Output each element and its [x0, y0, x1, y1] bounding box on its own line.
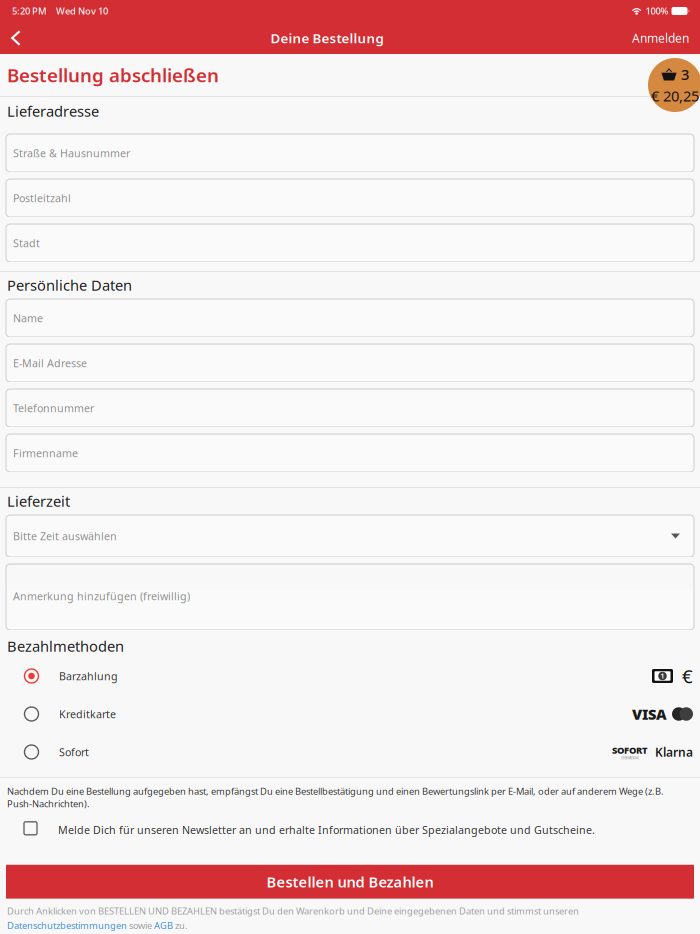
- staticText: Persönliche Daten: [7, 275, 132, 295]
- button[interactable]: Anmerkung hinzufügen (freiwillig): [0, 564, 700, 630]
- staticText: Melde Dich für unseren Newsletter an und…: [58, 823, 595, 837]
- button[interactable]: Zurück: [0, 22, 34, 54]
- staticText: Bitte Zeit auswählen: [13, 529, 117, 543]
- staticText: 3: [681, 64, 689, 84]
- staticText: Anmerkung hinzufügen (freiwillig): [13, 589, 190, 603]
- button[interactable]: Stadt: [0, 224, 700, 262]
- staticText: Lieferzeit: [7, 491, 70, 511]
- staticText: Bestellen und Bezahlen: [266, 872, 433, 891]
- staticText: Klarna: [655, 744, 693, 760]
- staticText: Anmelden: [632, 30, 689, 46]
- staticText: 5:20 PM: [12, 5, 47, 17]
- staticText: Datenschutzbestimmungen: [7, 919, 127, 932]
- button[interactable]: Kreditkarte: [0, 695, 700, 733]
- staticText: Kreditkarte: [59, 707, 116, 721]
- staticText: Bestellung abschließen: [7, 63, 219, 87]
- button[interactable]: Firmenname: [0, 434, 700, 472]
- staticText: SOFORT: [612, 744, 648, 756]
- staticText: E-Mail Adresse: [13, 356, 87, 370]
- button[interactable]: Datenschutzbestimmungen: [7, 919, 127, 932]
- staticText: Stadt: [13, 236, 40, 250]
- staticText: ÜBERWEISUNG: [621, 756, 639, 760]
- button[interactable]: Anmelden: [620, 24, 700, 52]
- button[interactable]: Sofort: [0, 733, 700, 771]
- staticText: Wed Nov 10: [56, 5, 108, 17]
- staticText: Name: [13, 311, 43, 325]
- staticText: Lieferadresse: [7, 101, 99, 121]
- staticText: Durch Anklicken von BESTELLEN UND BEZAHL…: [7, 905, 579, 917]
- button[interactable]: AGB: [154, 919, 173, 932]
- staticText: Postleitzahl: [13, 191, 71, 205]
- staticText: Deine Bestellung: [270, 29, 383, 47]
- staticText: AGB: [154, 919, 173, 932]
- button[interactable]: Telefonnummer: [0, 389, 700, 427]
- staticText: Barzahlung: [59, 669, 118, 683]
- button[interactable]: Melde Dich für unseren Newsletter an und…: [0, 822, 700, 842]
- staticText: Bezahlmethoden: [7, 636, 124, 656]
- button[interactable]: E-Mail Adresse: [0, 344, 700, 382]
- staticText: VISA: [632, 704, 667, 724]
- button[interactable]: Postleitzahl: [0, 179, 700, 217]
- button[interactable]: Warenkorb, 3 Artikel, 20,25 Euro: [648, 58, 700, 112]
- staticText: €: [682, 664, 693, 688]
- button[interactable]: Bitte Zeit auswählen: [0, 515, 700, 557]
- staticText: sowie: [127, 919, 154, 932]
- staticText: 100%: [645, 5, 668, 17]
- button[interactable]: Bestellen und Bezahlen: [0, 865, 700, 899]
- button[interactable]: Straße & Hausnummer: [0, 134, 700, 172]
- staticText: Straße & Hausnummer: [13, 146, 130, 160]
- staticText: € 20,25: [651, 86, 699, 105]
- staticText: Telefonnummer: [13, 401, 94, 415]
- staticText: Sofort: [59, 745, 89, 759]
- staticText: Nachdem Du eine Bestellung aufgegeben ha…: [7, 785, 664, 810]
- staticText: Firmenname: [13, 446, 78, 460]
- staticText: 1: [660, 672, 664, 680]
- button[interactable]: Name: [0, 299, 700, 337]
- staticText: zu.: [173, 919, 188, 932]
- button[interactable]: Barzahlung: [0, 657, 700, 695]
